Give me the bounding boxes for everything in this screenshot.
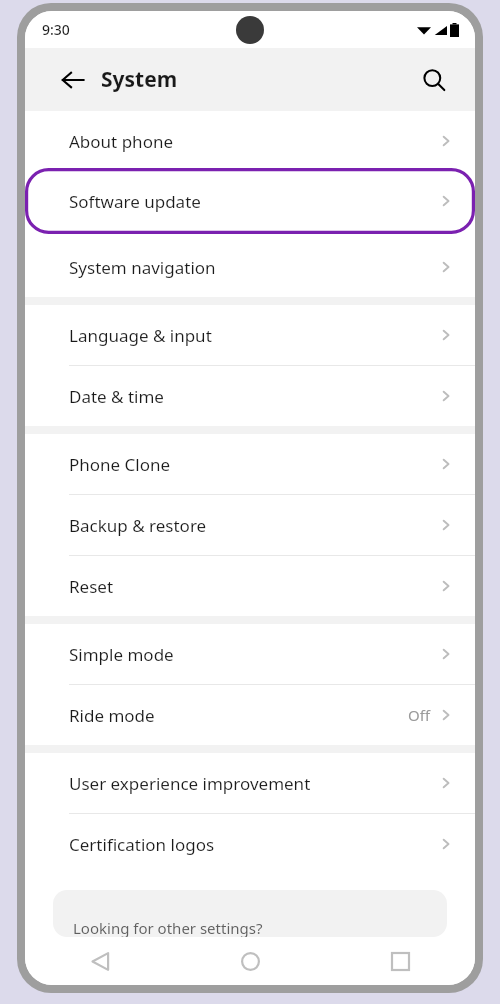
button[interactable]: Software update xyxy=(25,171,475,237)
button[interactable]: User experience improvement xyxy=(25,753,475,814)
staticText: Software update xyxy=(69,190,437,213)
button[interactable]: System navigation xyxy=(25,237,475,297)
button[interactable]: Software update xyxy=(69,168,455,234)
staticText: Looking for other settings? xyxy=(73,918,263,937)
staticText: Off xyxy=(408,705,431,725)
button[interactable]: Looking for other settings? xyxy=(53,890,447,937)
button[interactable]: Back xyxy=(55,62,91,98)
staticText: Backup & restore xyxy=(69,514,437,537)
button[interactable]: Phone Clone xyxy=(25,434,475,495)
staticText: Reset xyxy=(69,575,437,598)
staticText: Language & input xyxy=(69,324,437,347)
staticText: Phone Clone xyxy=(69,453,437,476)
staticText: System navigation xyxy=(69,256,437,279)
staticText: Ride mode xyxy=(69,704,408,727)
staticText: Simple mode xyxy=(69,643,437,666)
button[interactable]: Backup & restore xyxy=(25,495,475,556)
button[interactable]: Back xyxy=(25,937,175,985)
button[interactable]: About phone xyxy=(25,111,475,171)
staticText: User experience improvement xyxy=(69,772,437,795)
button[interactable]: Certification logos xyxy=(25,814,475,874)
staticText: 9:30 xyxy=(42,20,70,39)
button[interactable]: Simple mode xyxy=(25,624,475,685)
button[interactable]: Language & input xyxy=(25,305,475,366)
button[interactable]: Reset xyxy=(25,556,475,616)
staticText: Date & time xyxy=(69,385,437,408)
button[interactable]: Search xyxy=(415,61,453,99)
staticText: Software update xyxy=(69,193,437,216)
button[interactable]: Home xyxy=(175,937,325,985)
button[interactable]: Ride mode xyxy=(25,685,475,745)
button[interactable]: Date & time xyxy=(25,366,475,426)
staticText: Certification logos xyxy=(69,833,437,856)
button[interactable]: Recents xyxy=(325,937,475,985)
staticText: System xyxy=(101,65,178,94)
staticText: About phone xyxy=(69,130,437,153)
